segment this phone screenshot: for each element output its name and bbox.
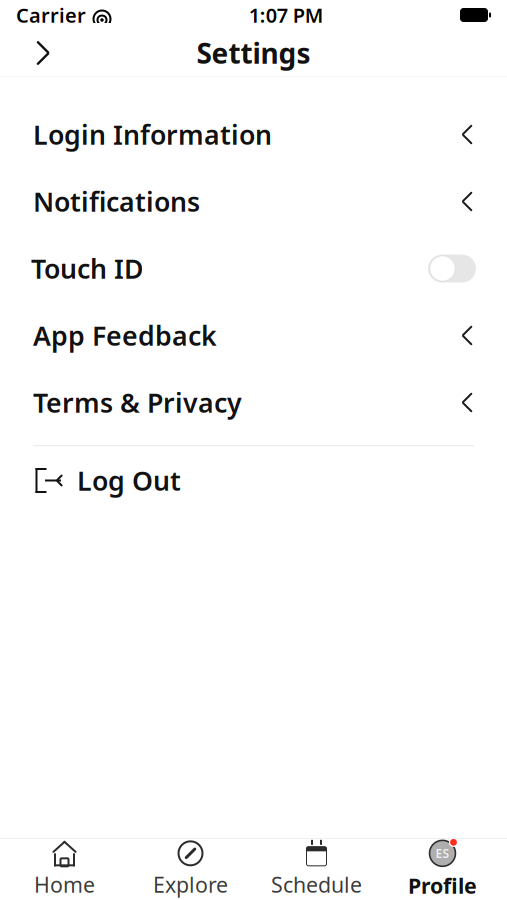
staticText: Home <box>34 870 95 899</box>
button[interactable]: Touch ID <box>0 235 507 302</box>
staticText: ES <box>435 845 449 861</box>
button[interactable]: Login Information <box>0 101 507 168</box>
staticText: Profile <box>408 871 477 900</box>
button[interactable]: Terms & Privacy <box>0 369 507 436</box>
button[interactable]: App Feedback <box>0 302 507 369</box>
staticText: App Feedback <box>33 318 217 353</box>
button[interactable]: Home <box>1 838 127 900</box>
button[interactable]: Back <box>20 30 66 76</box>
button[interactable]: Log Out <box>0 446 507 514</box>
button[interactable]: Schedule <box>253 838 379 900</box>
staticText: Settings <box>196 34 310 72</box>
button[interactable]: ES <box>379 838 505 900</box>
button[interactable]: Notifications <box>0 168 507 235</box>
staticText: Explore <box>153 870 228 899</box>
button[interactable]: Explore <box>127 838 253 900</box>
staticText: Log Out <box>77 463 181 498</box>
staticText: Terms & Privacy <box>33 385 242 420</box>
staticText: Login Information <box>33 117 272 152</box>
staticText: Notifications <box>33 184 200 219</box>
staticText: Touch ID <box>31 251 144 286</box>
staticText: Schedule <box>271 870 362 899</box>
staticText: Carrier <box>16 2 86 28</box>
staticText: 1:07 PM <box>249 2 324 28</box>
